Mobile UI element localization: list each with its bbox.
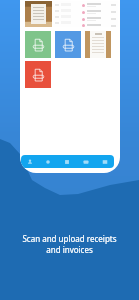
button[interactable]: Receipt photo xyxy=(85,31,111,58)
button[interactable]: Scan xyxy=(39,155,57,168)
button[interactable]: Documents xyxy=(57,155,76,168)
button[interactable]: Profile xyxy=(21,155,39,168)
button[interactable]: Receipt photo xyxy=(25,1,52,27)
button[interactable]: PDF document xyxy=(25,31,51,58)
button[interactable]: Camera xyxy=(76,155,95,168)
button[interactable]: PDF document xyxy=(25,61,51,88)
staticText: Scan and upload receipts and invoices xyxy=(0,233,139,255)
button[interactable]: Menu xyxy=(95,155,114,168)
button[interactable]: PDF document xyxy=(55,31,81,58)
